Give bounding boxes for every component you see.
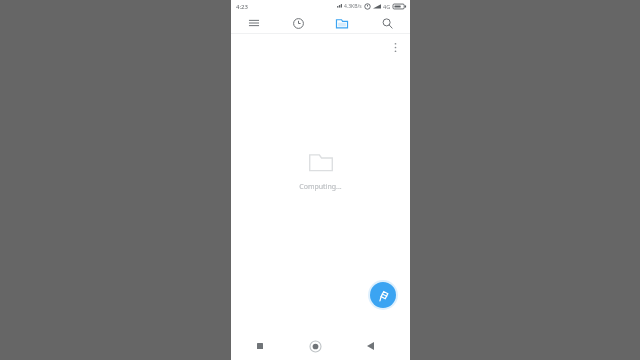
button[interactable]: More options <box>384 36 406 58</box>
button[interactable]: Files <box>320 13 364 33</box>
button[interactable]: Home <box>301 332 329 360</box>
button[interactable]: Menu <box>231 13 277 33</box>
staticText: 4G <box>383 3 391 10</box>
button[interactable]: Recents <box>246 332 274 360</box>
button[interactable]: Recent <box>277 13 320 33</box>
button[interactable]: Back <box>356 332 384 360</box>
button[interactable]: Search <box>364 13 410 33</box>
staticText: 4.3KB/s <box>344 3 362 10</box>
staticText: 4:23 <box>236 3 248 11</box>
staticText: Computing... <box>299 182 342 192</box>
button[interactable]: Clean <box>370 282 396 308</box>
